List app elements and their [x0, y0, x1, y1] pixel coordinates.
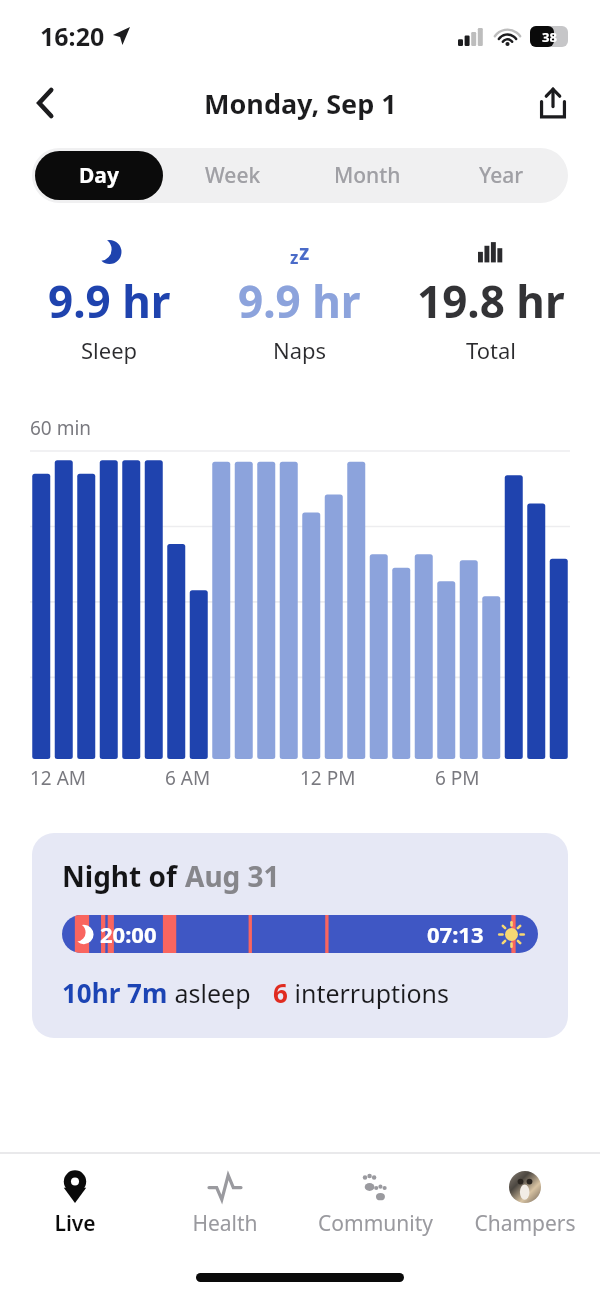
staticText: 19.8 hr [417, 271, 565, 331]
button[interactable]: Community [300, 1170, 450, 1238]
staticText: Naps [273, 335, 327, 365]
staticText: Community [318, 1209, 433, 1238]
staticText: 16:20 [40, 19, 105, 53]
staticText: 6 AM [165, 765, 211, 791]
staticText: Aug 31 [185, 857, 280, 895]
staticText: Champers [474, 1209, 576, 1238]
staticText: Live [54, 1209, 96, 1238]
button[interactable]: Year [434, 148, 568, 203]
staticText: 12 PM [300, 765, 356, 791]
staticText: Health [192, 1209, 258, 1238]
staticText: 07:13 [427, 919, 484, 949]
staticText: 60 min [30, 415, 92, 441]
button[interactable]: Champers [450, 1170, 600, 1238]
button[interactable]: 19.8 hr [395, 235, 586, 365]
staticText: Night of [62, 857, 185, 895]
staticText: Sleep [81, 335, 138, 365]
staticText: z [290, 246, 299, 269]
button[interactable]: z [204, 235, 395, 365]
staticText: interruptions [288, 976, 450, 1010]
button[interactable]: Health [150, 1170, 300, 1238]
button[interactable]: Week [166, 148, 300, 203]
staticText: Monday, Sep 1 [204, 85, 397, 122]
button[interactable]: 9.9 hr [14, 235, 204, 365]
staticText: z [299, 238, 310, 267]
button[interactable]: Back [22, 80, 68, 126]
staticText: 9.9 hr [48, 271, 171, 331]
staticText: Day [79, 161, 119, 190]
staticText: 9.9 hr [238, 271, 361, 331]
button[interactable]: Night of [32, 833, 568, 1038]
button[interactable]: Month [300, 148, 434, 203]
staticText: 6 [273, 975, 288, 1010]
staticText: 20:00 [100, 919, 157, 949]
staticText: 6 PM [435, 765, 480, 791]
staticText: 38 [542, 28, 557, 46]
button[interactable]: Day [35, 151, 163, 200]
staticText: 10hr 7m [62, 975, 168, 1010]
staticText: asleep [168, 976, 251, 1010]
staticText: Month [334, 161, 401, 190]
staticText: Week [205, 161, 261, 190]
button[interactable]: Live [0, 1170, 150, 1238]
staticText: 12 AM [30, 765, 87, 791]
button[interactable]: Share [530, 80, 576, 126]
staticText: Year [479, 161, 524, 190]
staticText: Total [466, 335, 516, 365]
